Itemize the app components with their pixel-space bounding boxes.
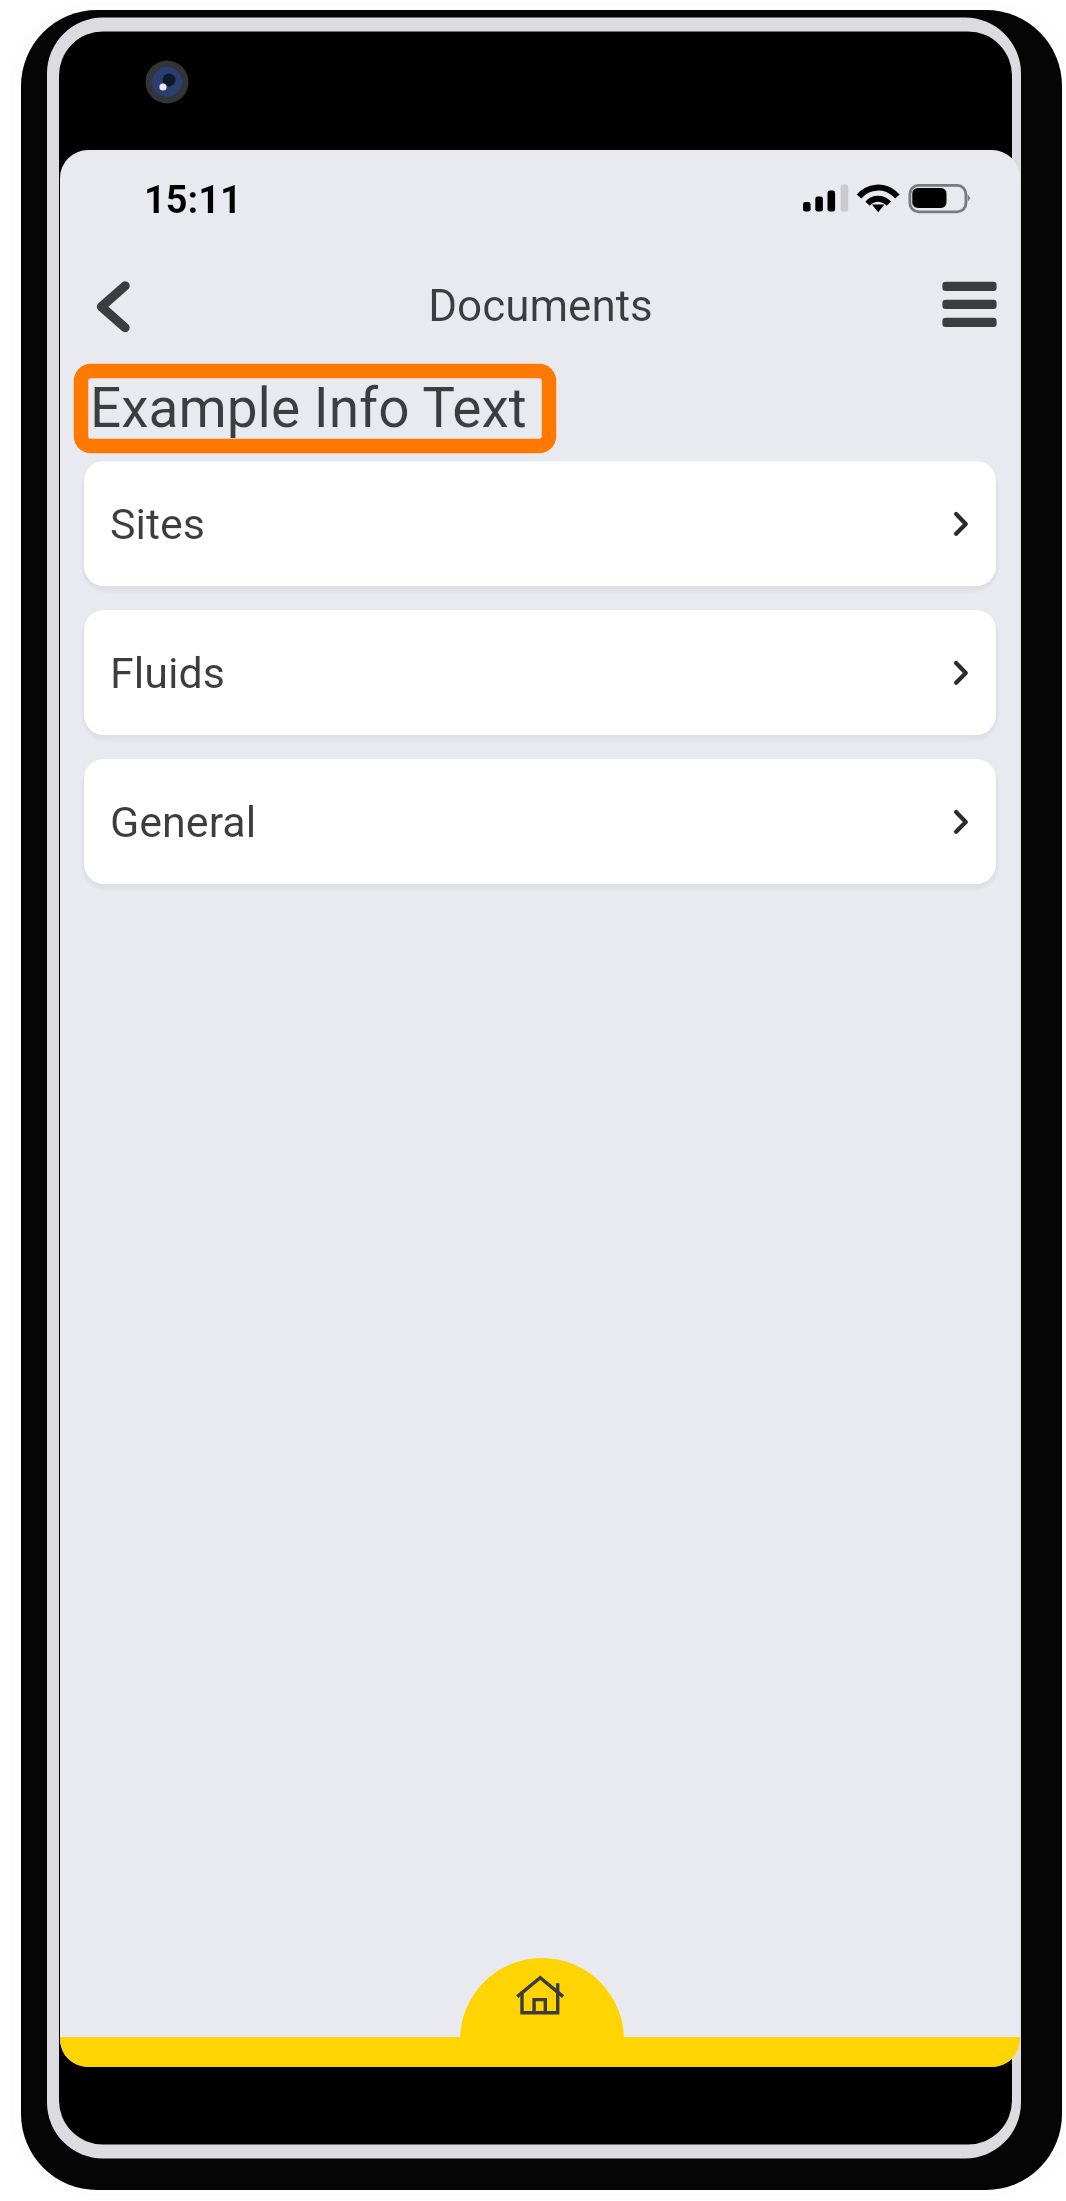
button[interactable]: General bbox=[84, 759, 996, 884]
button[interactable]: Home bbox=[460, 1958, 624, 2067]
staticText: Documents bbox=[428, 280, 653, 332]
staticText: Sites bbox=[110, 499, 206, 549]
button[interactable]: Example Info Text bbox=[74, 364, 556, 453]
staticText: Fluids bbox=[110, 648, 225, 698]
staticText: 15:11 bbox=[144, 178, 242, 223]
button[interactable]: Menu bbox=[916, 258, 1006, 348]
button[interactable]: Fluids bbox=[84, 610, 996, 735]
button[interactable]: Back bbox=[70, 250, 180, 356]
staticText: General bbox=[110, 797, 257, 847]
staticText: Example Info Text bbox=[90, 376, 527, 440]
button[interactable]: Sites bbox=[84, 461, 996, 586]
